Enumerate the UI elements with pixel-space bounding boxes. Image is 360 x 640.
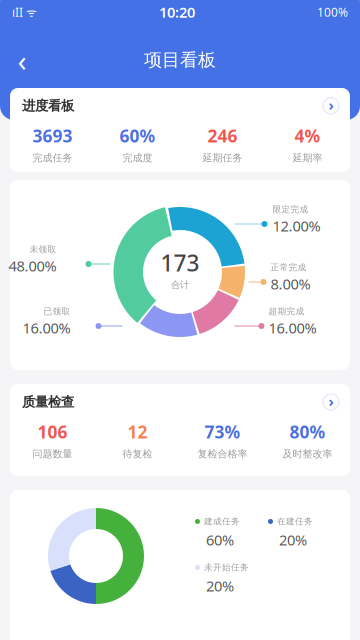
staticText: 正常完成 xyxy=(270,262,306,273)
staticText: › xyxy=(328,95,333,115)
button[interactable]: 查看进度看板详情 xyxy=(318,94,344,118)
staticText: 未领取 xyxy=(29,244,56,255)
staticText: 4% xyxy=(294,124,320,147)
staticText: 在建任务 xyxy=(277,516,313,527)
staticText: 16.00% xyxy=(22,318,70,338)
staticText: 100% xyxy=(317,4,348,20)
staticText: 待复检 xyxy=(122,448,152,460)
staticText: 106 xyxy=(37,420,67,444)
staticText: 及时整改率 xyxy=(282,448,332,460)
staticText: 建成任务 xyxy=(204,516,240,527)
staticText: 12.00% xyxy=(272,216,320,236)
staticText: 复检合格率 xyxy=(197,448,247,460)
staticText: 问题数量 xyxy=(32,448,72,460)
staticText: 3693 xyxy=(32,124,72,147)
staticText: 超期完成 xyxy=(268,306,304,317)
staticText: 80% xyxy=(289,420,325,444)
staticText: 质量检查 xyxy=(22,394,74,410)
staticText: 进度看板 xyxy=(22,97,74,114)
staticText: 20% xyxy=(206,576,234,596)
staticText: 未开始任务 xyxy=(204,562,249,573)
staticText: 173 xyxy=(160,247,199,278)
staticText: 已领取 xyxy=(43,306,70,317)
staticText: 延期任务 xyxy=(202,151,242,164)
staticText: 限定完成 xyxy=(272,204,308,215)
staticText: 8.00% xyxy=(270,274,310,294)
staticText: ıII ᯤ xyxy=(12,4,37,20)
staticText: 10:20 xyxy=(159,2,195,22)
staticText: 项目看板 xyxy=(144,49,216,71)
staticText: 60% xyxy=(206,530,234,550)
staticText: 12 xyxy=(127,420,147,444)
staticText: 20% xyxy=(279,530,307,550)
staticText: 60% xyxy=(119,124,155,147)
button[interactable]: 返回 xyxy=(0,40,44,80)
button[interactable]: 查看质量检查详情 xyxy=(318,390,344,414)
staticText: 48.00% xyxy=(8,256,56,276)
staticText: ‹ xyxy=(17,40,26,80)
staticText: 16.00% xyxy=(268,318,316,338)
staticText: 延期率 xyxy=(292,151,322,164)
staticText: 246 xyxy=(207,124,237,147)
staticText: 73% xyxy=(204,420,240,444)
staticText: 合计 xyxy=(171,279,189,291)
staticText: › xyxy=(328,391,333,411)
staticText: 完成度 xyxy=(122,151,152,164)
staticText: 完成任务 xyxy=(32,151,72,164)
